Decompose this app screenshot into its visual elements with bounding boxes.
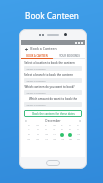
button[interactable]: 1 [24, 127, 33, 132]
staticText: 2 [37, 128, 39, 131]
staticText: YOUR BOOKINGS [59, 54, 80, 57]
button[interactable]: 8 [24, 132, 33, 137]
button[interactable]: 3 [42, 127, 50, 132]
button[interactable]: 5 [58, 127, 66, 132]
button[interactable]: 6 [66, 127, 74, 132]
staticText: S [28, 124, 30, 127]
staticText: December [45, 119, 61, 123]
button[interactable]: 10 [42, 132, 50, 137]
staticText: 16 [36, 138, 39, 141]
button[interactable]: 15 [24, 137, 33, 142]
staticText: Book Canteen [25, 10, 79, 21]
staticText: F [69, 124, 71, 127]
staticText: Which amount do want to book the canteen… [24, 97, 82, 101]
staticText: M [36, 124, 39, 127]
button[interactable]: 9 [33, 132, 42, 137]
button[interactable] [66, 132, 74, 137]
button[interactable]: 14 [74, 132, 82, 137]
staticText: 9 [37, 133, 39, 136]
staticText: Book a Canteen [30, 46, 57, 51]
staticText: 6 [69, 128, 71, 131]
button[interactable]: Select a canteen [24, 102, 82, 107]
staticText: Select a branch to book the canteen [24, 73, 73, 77]
button[interactable]: 11 [50, 132, 58, 137]
button[interactable]: Select a canteen [24, 90, 82, 95]
staticText: Select a canteen [26, 91, 46, 94]
staticText: 4 [53, 128, 55, 131]
button[interactable]: 16 [33, 137, 42, 142]
staticText: S [77, 124, 79, 127]
staticText: 15 [27, 138, 30, 141]
staticText: Select a canteen [26, 79, 46, 82]
staticText: 11 [53, 133, 56, 136]
staticText: 19 [61, 138, 64, 141]
staticText: Which canteen do you want to book? [24, 85, 75, 89]
staticText: 8 [28, 133, 30, 136]
button[interactable]: 2 [33, 127, 42, 132]
button[interactable]: Previous month [24, 119, 28, 123]
button[interactable]: 20 [66, 137, 74, 142]
button[interactable]: 21 [74, 137, 82, 142]
staticText: 10 [45, 133, 48, 136]
staticText: 17 [45, 138, 48, 141]
staticText: 20 [69, 138, 72, 141]
staticText: 21 [77, 138, 80, 141]
staticText: 1 [28, 128, 30, 131]
button[interactable]: YOUR BOOKINGS [53, 52, 85, 58]
staticText: T [61, 124, 63, 127]
staticText: 3 [45, 128, 47, 131]
button[interactable]: Book the canteen for these dates [24, 110, 82, 117]
staticText: Select a canteen [26, 67, 46, 70]
staticText: W [53, 124, 56, 127]
staticText: T [45, 124, 47, 127]
button[interactable]: 4 [50, 127, 58, 132]
button[interactable]: 7 [74, 127, 82, 132]
button[interactable] [58, 132, 66, 137]
staticText: 18 [53, 138, 56, 141]
button[interactable]: 17 [42, 137, 50, 142]
button[interactable]: 19 [58, 137, 66, 142]
staticText: 7 [77, 128, 79, 131]
button[interactable]: Back [24, 47, 28, 51]
staticText: Select a location to book the canteen [24, 61, 75, 65]
button[interactable]: Next month [78, 119, 82, 123]
staticText: BOOK A CANTEEN [26, 54, 48, 57]
button[interactable]: Select a canteen [24, 78, 82, 83]
button[interactable]: 18 [50, 137, 58, 142]
button[interactable]: BOOK A CANTEEN [21, 52, 53, 58]
staticText: Select a canteen [26, 103, 46, 106]
staticText: 5 [61, 128, 63, 131]
button[interactable]: Select a canteen [24, 66, 82, 71]
staticText: Book the canteen for these dates [32, 112, 75, 116]
staticText: 14 [77, 133, 80, 136]
